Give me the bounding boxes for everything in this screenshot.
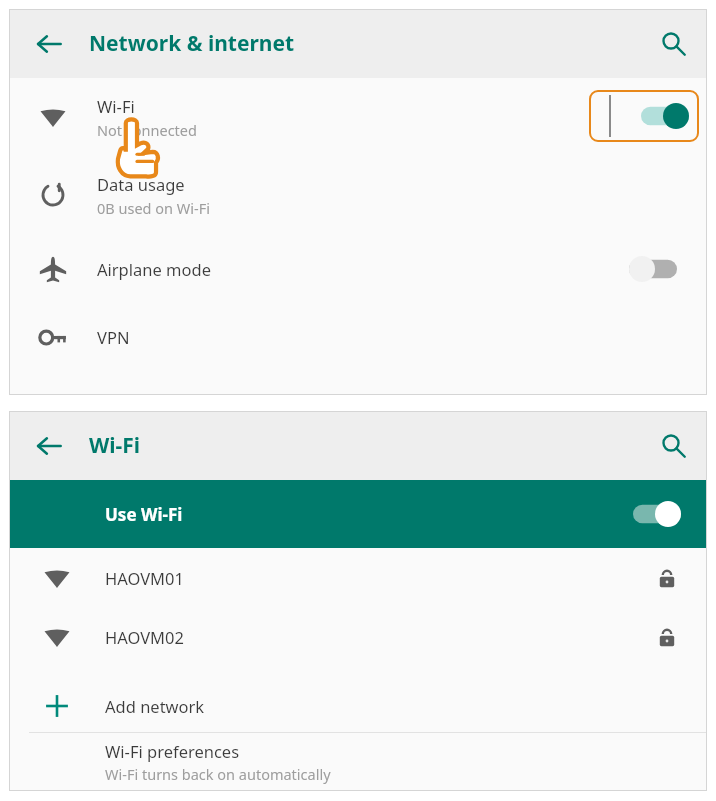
staticText: Data usage — [97, 173, 185, 195]
staticText: Wi-Fi preferences — [105, 740, 240, 762]
button[interactable]: Wi-Fi — [9, 78, 707, 156]
button[interactable]: HAOVM02 — [9, 607, 707, 666]
button[interactable]: Airplane mode — [9, 234, 707, 304]
staticText: Not connected — [97, 120, 197, 140]
staticText: Wi-Fi — [89, 431, 141, 460]
staticText: Use Wi-Fi — [105, 503, 183, 526]
button[interactable]: Wi-Fi preferences — [9, 733, 707, 791]
button[interactable]: Add network — [9, 680, 707, 732]
button[interactable]: Back — [9, 411, 89, 480]
staticText: HAOVM02 — [105, 626, 184, 648]
staticText: VPN — [97, 326, 130, 348]
button[interactable]: VPN — [9, 304, 707, 370]
button[interactable]: Use Wi-Fi — [9, 480, 707, 548]
staticText: Wi-Fi turns back on automatically — [105, 764, 331, 784]
staticText: Airplane mode — [97, 258, 211, 280]
staticText: Network & internet — [89, 29, 295, 58]
staticText: Add network — [105, 695, 205, 717]
staticText: Wi-Fi — [97, 95, 135, 117]
staticText: 0B used on Wi-Fi — [97, 198, 210, 218]
staticText: HAOVM01 — [105, 567, 184, 589]
button[interactable]: Data usage — [9, 156, 707, 234]
button[interactable]: Back — [9, 9, 89, 78]
button[interactable]: HAOVM01 — [9, 548, 707, 607]
button[interactable]: Search — [639, 9, 707, 78]
button[interactable]: Search — [639, 411, 707, 480]
